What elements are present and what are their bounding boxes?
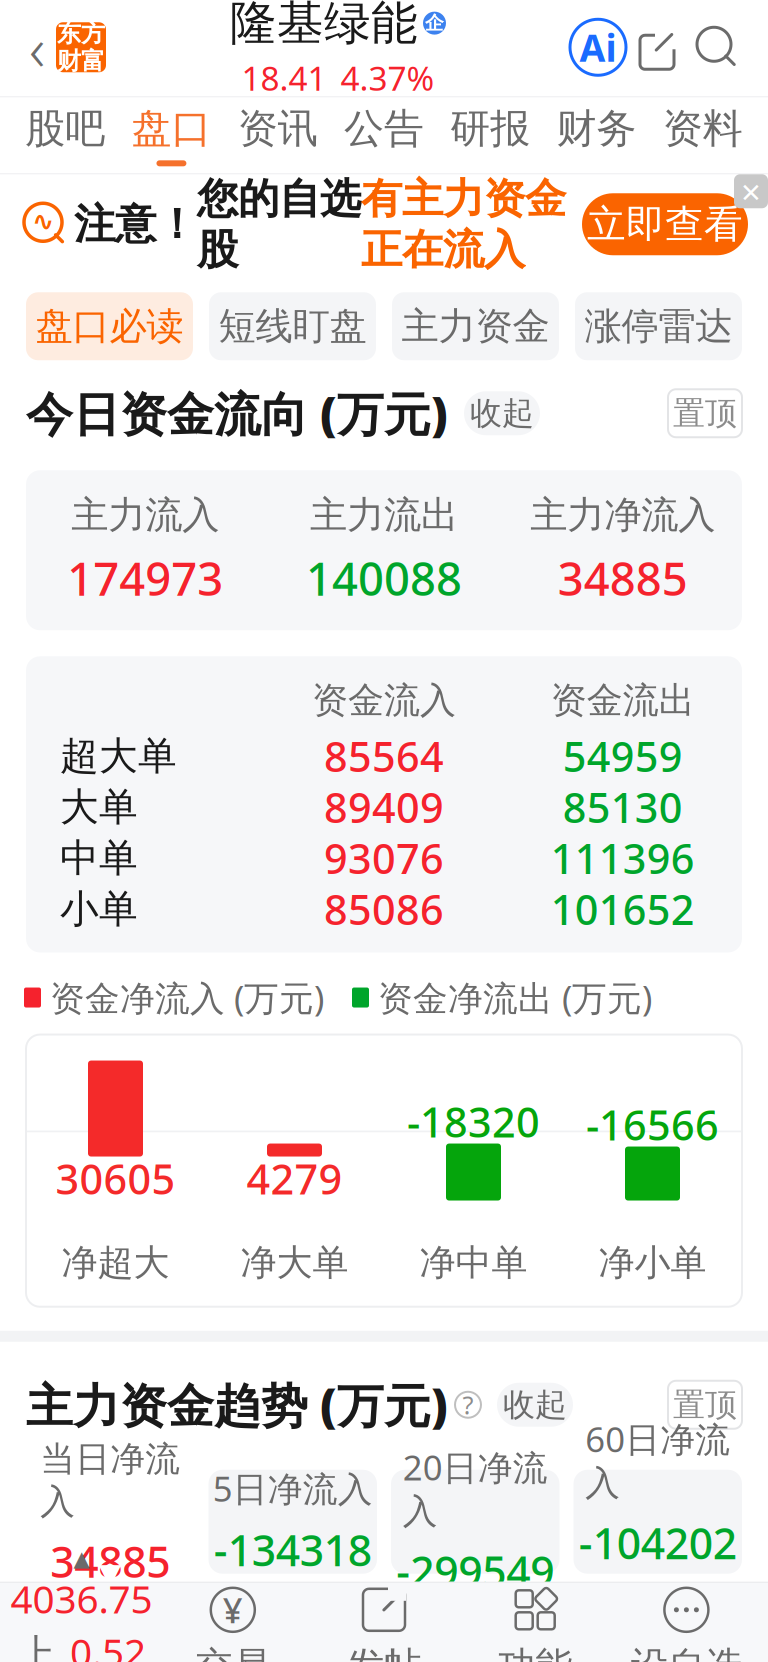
staticText: 4036.75 [11, 1573, 153, 1624]
button[interactable]: 涨停雷达 [575, 292, 742, 360]
staticText: 净大单 [240, 1240, 348, 1285]
staticText: ‹ [29, 6, 45, 88]
button[interactable]: 20日净流入 [391, 1470, 559, 1574]
staticText: ∿ [32, 206, 54, 236]
staticText: -16566 [586, 1097, 719, 1152]
button[interactable]: 盘口必读 [26, 292, 193, 360]
staticText: 置顶 [673, 394, 737, 433]
staticText: 93076 [324, 831, 444, 885]
button[interactable]: Share [626, 16, 688, 78]
staticText: 34885 [50, 1533, 170, 1590]
staticText: 涨停雷达 [584, 303, 732, 349]
button[interactable]: 股吧 [12, 97, 118, 173]
staticText: 5日净流入 [213, 1465, 373, 1511]
button[interactable]: Close banner [734, 174, 768, 208]
button[interactable]: 主力资金 [392, 292, 559, 360]
staticText: 盘口必读 [35, 303, 183, 349]
button[interactable]: 盘口 [118, 97, 225, 173]
button[interactable]: 财务 [543, 97, 650, 173]
button[interactable]: 收起 [497, 1383, 573, 1427]
staticText: 上证 [17, 1630, 56, 1662]
staticText: 18.41 [241, 56, 326, 100]
staticText: × [741, 168, 761, 214]
button[interactable]: 立即查看 [582, 193, 748, 255]
staticText: 有主力资金正在流入 [361, 173, 566, 275]
button[interactable]: 置顶 [668, 389, 742, 437]
staticText: 立即查看 [587, 200, 743, 248]
staticText: 60日净流入 [585, 1416, 730, 1504]
button[interactable]: 设自选 [611, 1582, 762, 1662]
staticText: 交易 [196, 1643, 270, 1662]
button[interactable]: 收起 [464, 391, 540, 435]
staticText: 140088 [306, 548, 462, 608]
staticText: 净超大 [61, 1240, 169, 1285]
staticText: 东方 [57, 19, 105, 48]
staticText: 85564 [324, 729, 444, 783]
button[interactable]: 公告 [331, 97, 437, 173]
button[interactable]: Back [18, 15, 56, 79]
staticText: 股吧 [25, 104, 105, 153]
staticText: 85086 [324, 882, 444, 936]
staticText: 主力资金趋势 (万元) [26, 1374, 448, 1436]
staticText: 当日净流入 [40, 1438, 180, 1523]
staticText: 30605 [55, 1151, 175, 1206]
staticText: 4279 [246, 1151, 342, 1206]
staticText: ? [462, 1388, 473, 1421]
staticText: 主力资金 [401, 303, 549, 349]
button[interactable]: 功能 [460, 1582, 611, 1662]
staticText: -18320 [407, 1094, 540, 1149]
staticText: 资料 [663, 104, 743, 153]
staticText: 研报 [450, 104, 530, 153]
staticText: 收起 [503, 1385, 567, 1424]
button[interactable]: 60日净流入 [573, 1470, 742, 1574]
staticText: 主力流出 [310, 492, 458, 538]
staticText: 隆基绿能 [230, 0, 418, 52]
staticText: 0.52% [70, 1626, 146, 1662]
button[interactable]: 5日净流入 [208, 1470, 377, 1574]
staticText: 注意！ [74, 199, 197, 250]
staticText: 今日资金流向 (万元) [26, 382, 448, 444]
button[interactable]: Search [688, 18, 746, 76]
button[interactable]: 发帖 [308, 1582, 460, 1662]
staticText: 54959 [563, 729, 683, 783]
staticText: 资讯 [238, 104, 318, 153]
button[interactable]: 研报 [437, 97, 543, 173]
button[interactable]: 当日净流入 [26, 1462, 194, 1582]
staticText: 101652 [551, 882, 695, 936]
staticText: 设自选 [631, 1643, 742, 1662]
staticText: 盘口 [131, 104, 211, 153]
button[interactable]: East Money [56, 22, 106, 72]
staticText: 85130 [563, 780, 683, 834]
button[interactable]: 置顶 [668, 1381, 742, 1429]
staticText: 资金净流出 (万元) [378, 974, 652, 1020]
button[interactable]: AI [570, 19, 626, 75]
button[interactable]: 短线盯盘 [209, 292, 376, 360]
staticText: 财富 [57, 46, 105, 76]
staticText: 主力净流入 [530, 492, 715, 538]
button[interactable]: 资讯 [225, 97, 331, 173]
staticText: 功能 [498, 1643, 572, 1662]
staticText: 资金流出 [551, 678, 695, 722]
button[interactable]: 资料 [650, 97, 756, 173]
staticText: -1042027 [579, 1514, 737, 1628]
staticText: 净中单 [419, 1240, 527, 1285]
staticText: -134318 [214, 1521, 372, 1578]
staticText: 发帖 [347, 1643, 421, 1662]
staticText: 超大单 [60, 732, 177, 780]
staticText: 企 [425, 12, 444, 35]
staticText: 4.37% [340, 56, 434, 100]
staticText: 净小单 [598, 1240, 706, 1285]
staticText: 89409 [324, 780, 444, 834]
staticText: 174973 [67, 548, 223, 608]
staticText: -299549 [396, 1543, 554, 1599]
button[interactable]: Shanghai Composite index [6, 1582, 157, 1662]
staticText: 中单 [60, 834, 138, 882]
staticText: ▲ [74, 1547, 90, 1571]
staticText: 小单 [60, 885, 138, 933]
staticText: ▼ [99, 1557, 122, 1590]
staticText: 20日净流入 [403, 1444, 548, 1533]
staticText: 大单 [60, 783, 138, 831]
staticText: 资金净流入 (万元) [50, 974, 324, 1020]
staticText: 主力流入 [71, 492, 219, 538]
button[interactable]: ¥ [157, 1582, 308, 1662]
